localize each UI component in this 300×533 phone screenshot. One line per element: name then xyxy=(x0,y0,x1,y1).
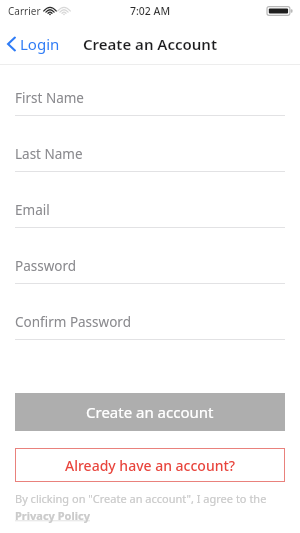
button[interactable]: Confirm Password xyxy=(0,305,300,361)
staticText: Confirm Password xyxy=(15,313,131,331)
staticText: Already have an account? xyxy=(65,456,236,475)
staticText: Last Name xyxy=(15,145,83,163)
staticText: Privacy Policy xyxy=(15,508,90,523)
staticText: Carrier xyxy=(8,4,41,18)
button[interactable]: Already have an account? xyxy=(15,448,285,482)
staticText: First Name xyxy=(15,89,84,107)
staticText: Login xyxy=(20,34,60,54)
button[interactable]: Last Name xyxy=(0,137,300,193)
button[interactable]: Privacy Policy xyxy=(15,508,90,523)
staticText: Email xyxy=(15,201,50,219)
staticText: 7:02 AM xyxy=(130,4,171,18)
button[interactable]: Create an account xyxy=(15,393,285,431)
staticText: Create an Account xyxy=(83,34,217,54)
button[interactable]: Login xyxy=(7,34,60,54)
button[interactable]: Password xyxy=(0,249,300,305)
staticText: By clicking on "Create an account", I ag… xyxy=(15,491,267,506)
button[interactable]: First Name xyxy=(0,81,300,137)
button[interactable]: Email xyxy=(0,193,300,249)
staticText: Create an account xyxy=(86,402,214,422)
staticText: Password xyxy=(15,257,77,275)
